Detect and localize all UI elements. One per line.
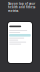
staticText: Stay on top of your health and fitness m… [8,2,35,13]
